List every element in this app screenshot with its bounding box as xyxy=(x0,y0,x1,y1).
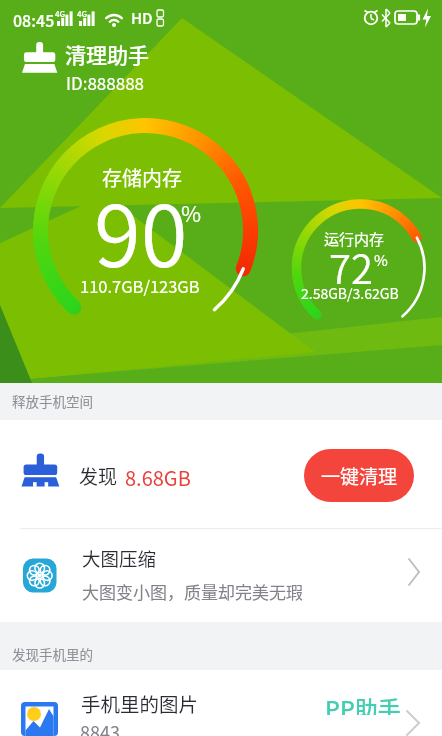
staticText: 发现 xyxy=(79,462,118,488)
staticText: 90 xyxy=(94,168,188,291)
button[interactable] xyxy=(0,529,442,622)
staticText: 手机里的图片 xyxy=(81,689,199,715)
staticText: % xyxy=(374,249,388,269)
staticText: 清理助手 xyxy=(65,39,149,67)
staticText: 4G xyxy=(55,8,66,18)
staticText: 8.68GB xyxy=(125,463,191,489)
staticText: 72 xyxy=(329,238,373,296)
button[interactable] xyxy=(0,420,442,528)
staticText: 大图压缩 xyxy=(82,545,157,572)
staticText: 发现手机里的 xyxy=(12,644,93,664)
staticText: 8843 xyxy=(80,719,120,736)
staticText: PP助手 xyxy=(325,691,401,715)
staticText: 大图变小图，质量却完美无瑕 xyxy=(82,579,303,604)
staticText: 08:45 xyxy=(13,8,55,31)
button[interactable] xyxy=(0,670,442,736)
staticText: 存储内存 xyxy=(102,163,182,191)
staticText: 4G xyxy=(77,8,88,18)
staticText: ID:888888 xyxy=(66,70,145,90)
staticText: HD xyxy=(131,7,153,29)
staticText: % xyxy=(181,196,197,228)
staticText: 一键清理 xyxy=(321,462,398,490)
button[interactable]: 一键清理 xyxy=(304,449,414,502)
staticText: 2.58GB/3.62GB xyxy=(301,283,399,303)
staticText: 运行内存 xyxy=(324,228,385,250)
staticText: 110.7GB/123GB xyxy=(80,274,200,298)
staticText: 释放手机空间 xyxy=(12,391,93,411)
